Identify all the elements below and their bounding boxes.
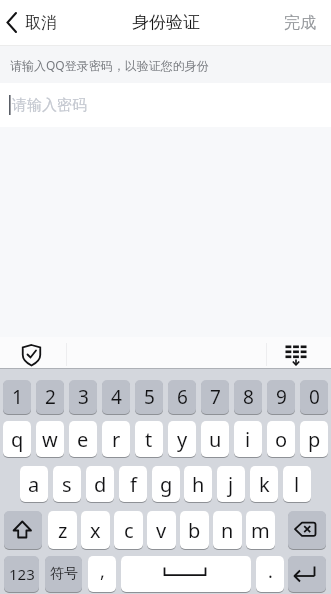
staticText: x [90,517,101,544]
staticText: 请输入密码 [12,96,87,115]
button[interactable]: 6 [168,380,196,414]
staticText: . [268,559,273,584]
button[interactable]: m [246,511,275,549]
button[interactable]: r [102,421,130,457]
button[interactable]: u [201,421,229,457]
staticText: y [177,426,188,453]
staticText: 4 [111,384,122,410]
staticText: v [156,517,167,544]
staticText: 8 [243,384,254,410]
staticText: g [160,471,173,498]
staticText: s [62,471,72,498]
staticText: u [209,426,222,453]
button[interactable]: 请输入密码 [0,83,331,127]
button[interactable] [121,556,251,592]
staticText: a [28,471,40,498]
staticText: i [245,426,251,453]
staticText: 取消 [25,13,57,33]
button[interactable]: k [250,466,278,502]
button[interactable]: h [184,466,212,502]
staticText: , [100,559,105,584]
staticText: 符号 [50,565,78,583]
staticText: 7 [210,384,221,410]
button[interactable]: 0 [300,380,328,414]
button[interactable]: 123 [4,556,39,592]
button[interactable]: 4 [102,380,130,414]
staticText: h [192,471,205,498]
staticText: 6 [177,384,188,410]
button[interactable]: d [86,466,114,502]
staticText: 1 [12,384,23,410]
staticText: 123 [9,564,35,584]
staticText: t [145,426,153,453]
staticText: 身份验证 [132,12,200,33]
button[interactable]: 完成 [269,0,331,45]
button[interactable]: 7 [201,380,229,414]
button[interactable]: i [234,421,262,457]
button[interactable]: 符号 [45,556,82,592]
button[interactable]: q [3,421,31,457]
staticText: 9 [276,384,287,410]
staticText: 5 [144,384,155,410]
staticText: 2 [45,384,56,410]
button[interactable]: . [256,556,284,592]
button[interactable]: w [36,421,64,457]
button[interactable]: v [147,511,176,549]
button[interactable]: g [152,466,180,502]
button[interactable]: p [300,421,328,457]
button[interactable]: 1 [3,380,31,414]
button[interactable]: 8 [234,380,262,414]
button[interactable]: , [88,556,116,592]
button[interactable]: f [119,466,147,502]
button[interactable] [280,340,316,368]
staticText: z [58,517,68,544]
button[interactable]: 5 [135,380,163,414]
button[interactable]: n [213,511,242,549]
button[interactable]: y [168,421,196,457]
button[interactable]: j [217,466,245,502]
button[interactable] [288,511,326,549]
staticText: p [308,426,321,453]
staticText: k [259,471,270,498]
staticText: 请输入QQ登录密码，以验证您的身份 [10,57,209,73]
button[interactable]: b [180,511,209,549]
button[interactable] [14,340,50,368]
staticText: r [112,426,121,453]
staticText: o [275,426,288,453]
staticText: n [221,517,234,544]
button[interactable]: o [267,421,295,457]
staticText: q [11,426,24,453]
staticText: j [228,471,234,498]
staticText: 0 [309,384,320,410]
button[interactable]: 3 [69,380,97,414]
staticText: e [77,426,89,453]
staticText: 3 [78,384,89,410]
button[interactable]: 9 [267,380,295,414]
button[interactable]: e [69,421,97,457]
staticText: d [94,471,107,498]
button[interactable]: 取消 [0,0,64,45]
staticText: m [251,517,270,544]
button[interactable]: z [48,511,77,549]
button[interactable]: s [53,466,81,502]
button[interactable] [4,511,42,549]
button[interactable]: t [135,421,163,457]
staticText: 完成 [284,13,316,33]
staticText: c [124,517,134,544]
button[interactable]: c [114,511,143,549]
button[interactable]: 2 [36,380,64,414]
staticText: w [42,426,58,453]
button[interactable]: l [283,466,311,502]
staticText: f [130,471,137,498]
button[interactable]: x [81,511,110,549]
button[interactable] [288,556,326,592]
staticText: l [294,471,300,498]
button[interactable]: a [20,466,48,502]
staticText: b [188,517,201,544]
